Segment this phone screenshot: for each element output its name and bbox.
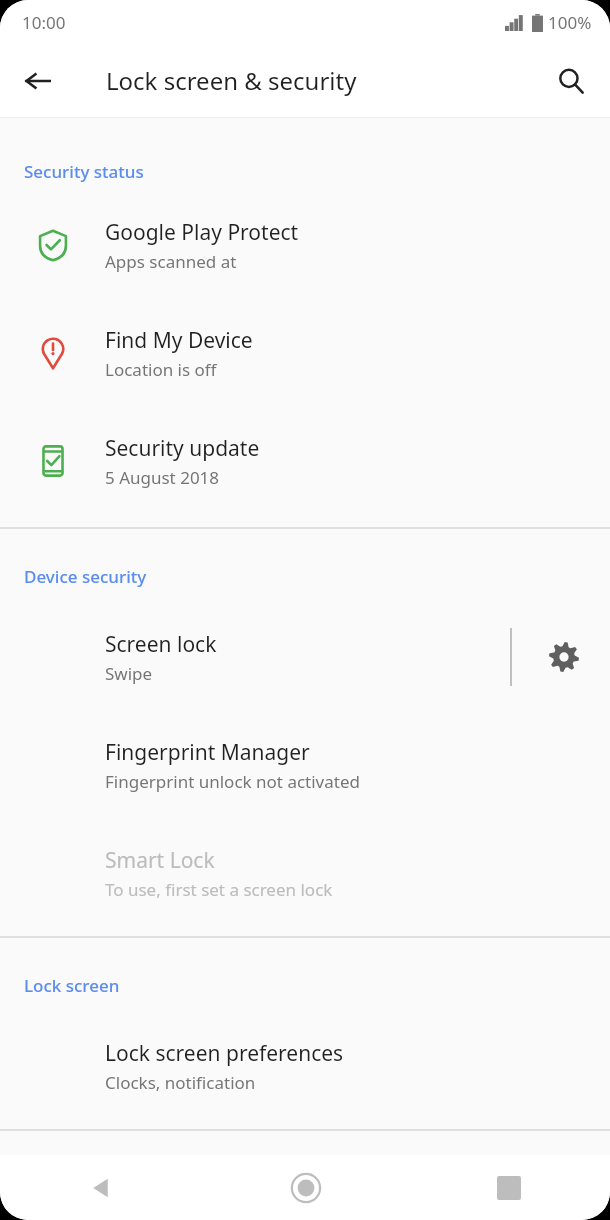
staticText: Security status [24, 160, 144, 183]
staticText: Smart Lock [105, 846, 215, 875]
staticText: To use, first set a screen lock [105, 878, 333, 901]
staticText: Security update [105, 434, 260, 463]
staticText: Lock screen [24, 974, 120, 997]
staticText: Location is off [105, 358, 217, 381]
staticText: Clocks, notification [105, 1071, 256, 1094]
staticText: Screen lock [105, 630, 217, 659]
button[interactable]: Search [544, 54, 598, 108]
staticText: Apps scanned at [105, 250, 237, 273]
button[interactable]: Fingerprint Manager [0, 728, 610, 802]
staticText: Fingerprint unlock not activated [105, 770, 360, 793]
staticText: Fingerprint Manager [105, 738, 310, 767]
staticText: 100% [548, 11, 592, 34]
button[interactable]: Lock screen preferences [0, 1029, 610, 1103]
staticText: Find My Device [105, 326, 253, 355]
staticText: Device security [24, 565, 147, 588]
staticText: Lock screen & security [106, 64, 357, 97]
staticText: Lock screen preferences [105, 1039, 344, 1068]
button[interactable]: Screen lock settings [538, 631, 590, 683]
staticText: Google Play Protect [105, 218, 299, 247]
staticText: 10:00 [22, 11, 66, 34]
button[interactable]: Screen lock [0, 620, 610, 694]
button[interactable]: Find My Device [0, 315, 610, 391]
button[interactable]: Back [0, 1155, 204, 1220]
button[interactable]: Recent apps [407, 1155, 610, 1220]
button[interactable]: Security update [0, 423, 610, 499]
button[interactable]: Smart Lock [0, 836, 610, 910]
staticText: Swipe [105, 662, 153, 685]
button[interactable]: Google Play Protect [0, 207, 610, 283]
button[interactable]: Back [10, 53, 66, 109]
button[interactable]: Home [204, 1155, 407, 1220]
staticText: 5 August 2018 [105, 466, 220, 489]
